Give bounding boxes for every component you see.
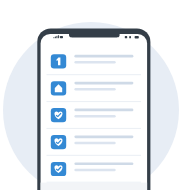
- button[interactable]: Phone mockup with checklist: [0, 0, 190, 190]
